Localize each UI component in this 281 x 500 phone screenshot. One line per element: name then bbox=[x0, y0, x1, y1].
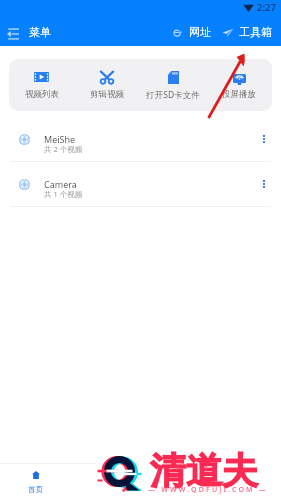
button[interactable]: Website bbox=[169, 25, 215, 39]
other: Website bbox=[173, 28, 182, 37]
staticText: 我的 bbox=[239, 485, 254, 494]
staticText: MeiShe bbox=[44, 133, 76, 145]
button[interactable]: More options bbox=[251, 126, 277, 152]
button[interactable]: Camera bbox=[0, 162, 281, 206]
staticText: 视频列表 bbox=[25, 89, 59, 100]
staticText: 首页 bbox=[28, 485, 43, 494]
staticText: 共 2 个视频 bbox=[44, 144, 83, 154]
staticText: 菜单 bbox=[29, 25, 51, 39]
button[interactable]: 剪辑视频 bbox=[74, 59, 140, 111]
button[interactable]: 工具 bbox=[141, 464, 211, 500]
staticText: 工具 bbox=[169, 485, 184, 494]
staticText: 投屏播放 bbox=[222, 89, 256, 100]
staticText: Camera bbox=[44, 178, 77, 190]
staticText: 打开SD卡文件 bbox=[146, 89, 200, 101]
other: Toolbox bbox=[222, 26, 234, 38]
button[interactable]: 打开SD卡文件 bbox=[140, 59, 206, 111]
button[interactable]: 我的 bbox=[211, 464, 281, 500]
button[interactable]: 投屏播放 bbox=[206, 59, 272, 111]
button[interactable]: More options bbox=[251, 171, 277, 197]
button[interactable]: Toolbox bbox=[218, 25, 281, 39]
button[interactable]: 视频 bbox=[71, 464, 141, 500]
button[interactable]: 视频列表 bbox=[9, 59, 74, 111]
staticText: 2:27 bbox=[257, 1, 276, 14]
staticText: 视频 bbox=[99, 485, 114, 494]
staticText: 共 1 个视频 bbox=[44, 189, 83, 199]
button[interactable]: Menu bbox=[0, 25, 57, 39]
staticText: 网址 bbox=[189, 25, 211, 39]
button[interactable]: MeiShe bbox=[0, 117, 281, 161]
staticText: 剪辑视频 bbox=[90, 89, 124, 100]
staticText: — WWW.QDFUJI.COM — bbox=[148, 485, 268, 495]
button[interactable]: 首页 bbox=[0, 464, 71, 500]
staticText: 清道夫 bbox=[150, 448, 258, 493]
staticText: 工具箱 bbox=[239, 25, 272, 39]
other: Menu bbox=[7, 27, 19, 39]
